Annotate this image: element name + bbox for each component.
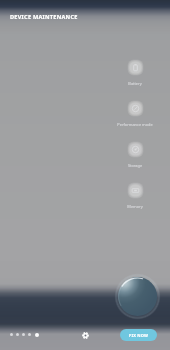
staticText: Storage — [109, 163, 161, 168]
button[interactable]: Settings — [76, 326, 94, 344]
button[interactable]: Storage — [109, 141, 161, 168]
staticText: DEVICE MAINTENANCE — [10, 13, 78, 21]
button[interactable]: FIX NOW — [120, 329, 157, 341]
staticText: Battery — [109, 81, 161, 86]
button[interactable]: Optimize now — [117, 276, 158, 317]
staticText: Performance mode — [109, 122, 161, 127]
button[interactable]: Memory — [109, 182, 161, 209]
button[interactable]: Battery — [109, 59, 161, 86]
staticText: FIX NOW — [129, 333, 149, 338]
staticText: Memory — [109, 204, 161, 209]
button[interactable]: Performance mode — [109, 100, 161, 127]
